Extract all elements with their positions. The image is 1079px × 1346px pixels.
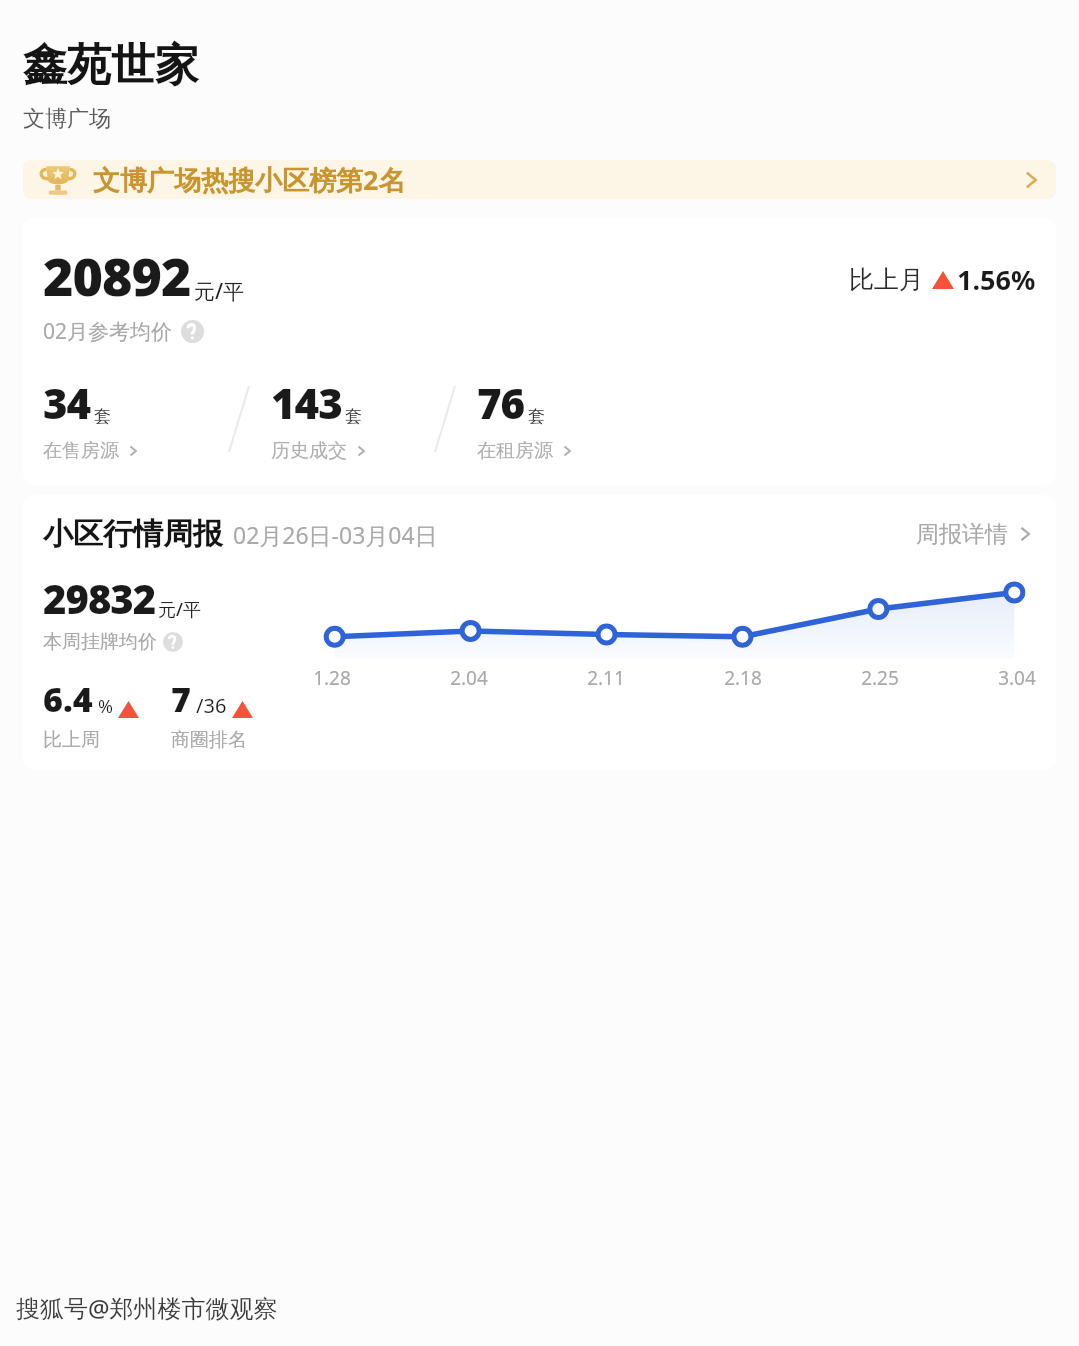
staticText: 商圈排名 xyxy=(171,728,247,752)
button[interactable]: 小区行情周报 xyxy=(43,515,1036,553)
staticText: 02月26日-03月04日 xyxy=(233,519,438,550)
staticText: % xyxy=(98,694,113,719)
staticText: 套 xyxy=(528,406,545,427)
other: 说明 xyxy=(181,320,204,343)
staticText: 3.04 xyxy=(998,665,1036,691)
staticText: 搜狐号@郑州楼市微观察 xyxy=(16,1291,278,1324)
staticText: 文博广场热搜小区榜第2名 xyxy=(93,161,406,198)
staticText: 2.11 xyxy=(587,665,625,691)
staticText: 1.56% xyxy=(957,261,1036,298)
staticText: /36 xyxy=(196,692,227,719)
staticText: 6.4 xyxy=(43,676,93,722)
button[interactable]: 34 xyxy=(43,374,141,463)
staticText: 7 xyxy=(171,676,191,722)
staticText: 周报详情 xyxy=(916,520,1008,549)
staticText: 在租房源 xyxy=(477,439,553,463)
staticText: 02月参考均价 xyxy=(43,317,173,346)
other: 说明 xyxy=(163,632,183,652)
staticText: 29832 xyxy=(43,571,156,625)
staticText: 比上周 xyxy=(43,728,100,752)
staticText: 元/平 xyxy=(158,597,201,622)
staticText: 文博广场 xyxy=(23,105,111,133)
staticText: 34 xyxy=(43,374,91,431)
staticText: 76 xyxy=(477,374,525,431)
staticText: 2.25 xyxy=(861,665,899,691)
staticText: 1.28 xyxy=(313,665,351,691)
staticText: 在售房源 xyxy=(43,439,119,463)
button[interactable]: 76 xyxy=(477,374,575,463)
staticText: 鑫苑世家 xyxy=(23,38,199,93)
staticText: 元/平 xyxy=(194,277,245,306)
staticText: 历史成交 xyxy=(271,439,347,463)
staticText: 2.04 xyxy=(450,665,488,691)
staticText: 2.18 xyxy=(724,665,762,691)
staticText: 20892 xyxy=(43,240,191,311)
staticText: 套 xyxy=(345,406,362,427)
staticText: 套 xyxy=(94,406,111,427)
button[interactable]: 文博广场热搜小区榜第2名 xyxy=(23,160,1056,199)
staticText: 本周挂牌均价 xyxy=(43,630,157,654)
staticText: 143 xyxy=(271,374,342,431)
staticText: 比上月 xyxy=(849,264,924,295)
button[interactable]: 143 xyxy=(271,374,369,463)
staticText: 小区行情周报 xyxy=(43,515,223,553)
